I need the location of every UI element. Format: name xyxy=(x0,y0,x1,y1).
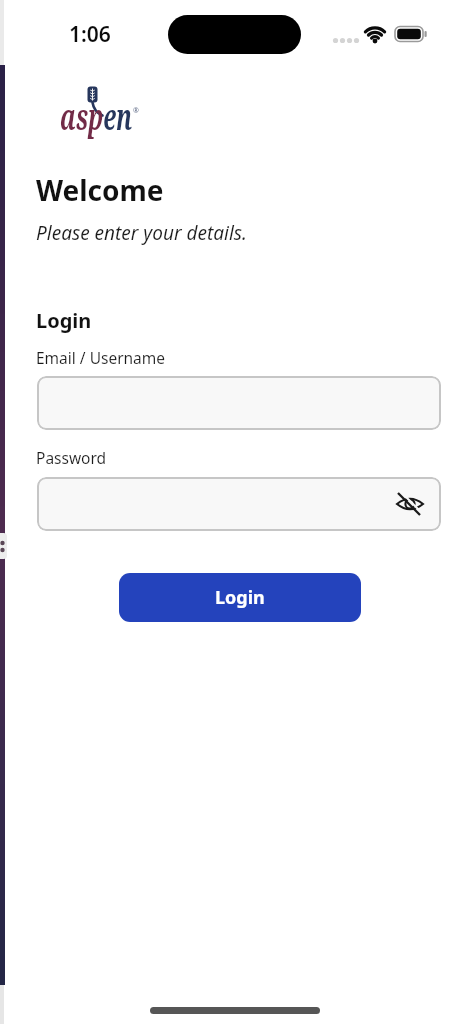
staticText: Please enter your details. xyxy=(36,220,247,246)
button[interactable]: Login xyxy=(119,573,361,622)
staticText: ® xyxy=(133,106,139,116)
button[interactable] xyxy=(37,477,441,531)
staticText: Welcome xyxy=(36,171,164,209)
staticText: aspen xyxy=(60,91,133,140)
staticText: Login xyxy=(215,585,265,610)
staticText: Login xyxy=(36,307,92,334)
staticText: Password xyxy=(36,447,107,468)
staticText: Email / Username xyxy=(36,347,166,368)
button[interactable] xyxy=(394,490,426,518)
staticText: 1:06 xyxy=(69,20,111,49)
button[interactable] xyxy=(37,376,441,430)
